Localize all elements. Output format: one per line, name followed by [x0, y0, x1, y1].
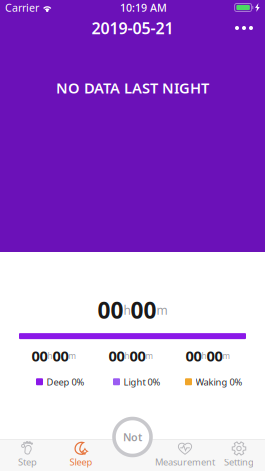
button[interactable]: Measurement	[157, 439, 213, 471]
button[interactable]: Not recording	[112, 417, 152, 457]
staticText: Waking 0%	[195, 376, 242, 388]
staticText: m	[156, 302, 167, 318]
staticText: h	[123, 302, 130, 318]
staticText: h	[47, 350, 52, 361]
staticText: 00	[130, 295, 156, 325]
staticText: Deep 0%	[46, 376, 84, 388]
staticText: 00	[108, 346, 124, 366]
staticText: NO DATA LAST NIGHT	[56, 78, 209, 97]
staticText: 00	[129, 346, 145, 366]
staticText: 10:19 AM	[120, 0, 167, 15]
staticText: Setting	[224, 456, 254, 468]
staticText: m	[222, 350, 229, 361]
staticText: Carrier	[5, 0, 39, 15]
button[interactable]: Sleep	[55, 439, 107, 471]
staticText: 00	[31, 346, 47, 366]
staticText: Not	[123, 430, 142, 444]
staticText: Measurement	[155, 456, 215, 468]
staticText: h	[201, 350, 206, 361]
button[interactable]: Setting	[213, 439, 265, 471]
button[interactable]: Step	[0, 439, 55, 471]
staticText: Sleep	[69, 456, 92, 468]
staticText: m	[145, 350, 152, 361]
staticText: h	[124, 350, 129, 361]
staticText: m	[68, 350, 75, 361]
staticText: Light 0%	[123, 376, 160, 388]
staticText: 00	[97, 295, 123, 325]
button[interactable]: More options	[223, 15, 265, 41]
staticText: Step	[18, 456, 37, 468]
staticText: 00	[206, 346, 222, 366]
staticText: 2019-05-21	[91, 17, 173, 39]
staticText: 00	[185, 346, 201, 366]
staticText: 00	[52, 346, 68, 366]
